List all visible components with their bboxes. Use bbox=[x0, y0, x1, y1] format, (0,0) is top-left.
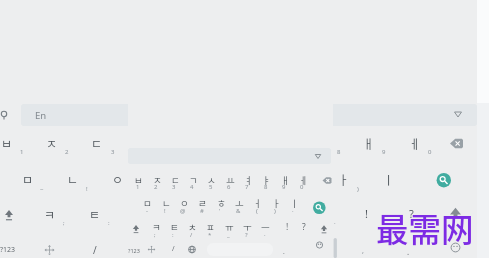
button[interactable]: 8 bbox=[236, 172, 296, 202]
button[interactable]: & bbox=[238, 174, 298, 204]
button[interactable]: ㅡ bbox=[291, 199, 351, 229]
button[interactable]: ㅏ bbox=[314, 164, 374, 194]
button[interactable]: ㅏ bbox=[246, 188, 306, 218]
button[interactable]: ! bbox=[57, 174, 117, 204]
button[interactable]: 3 bbox=[83, 137, 143, 167]
button[interactable]: En bbox=[11, 100, 71, 130]
button[interactable]: 8 bbox=[309, 137, 369, 167]
button[interactable]: 1 bbox=[0, 137, 52, 167]
button[interactable]: . bbox=[378, 236, 438, 258]
button[interactable]: ㅛ bbox=[200, 165, 260, 195]
button[interactable]: ㄹ bbox=[172, 188, 232, 218]
button[interactable]: ㅋ bbox=[126, 212, 186, 242]
button[interactable]: ㄱ bbox=[113, 128, 173, 158]
button[interactable]: ㅌ bbox=[144, 212, 204, 242]
button[interactable]: ' bbox=[193, 174, 253, 204]
button[interactable]: ㅅ bbox=[181, 165, 241, 195]
button[interactable]: / bbox=[125, 208, 185, 238]
button[interactable]: - bbox=[117, 196, 177, 226]
button[interactable]: ㅎ bbox=[178, 164, 238, 194]
button[interactable]: 5 bbox=[181, 172, 241, 202]
button[interactable]: ㅈ bbox=[127, 165, 187, 195]
button[interactable]: / bbox=[161, 220, 221, 250]
button[interactable]: 4 bbox=[162, 172, 222, 202]
button[interactable]: ㄱ bbox=[163, 165, 223, 195]
button[interactable]: * bbox=[170, 208, 230, 238]
button[interactable]: ㅂ bbox=[108, 165, 168, 195]
button[interactable]: ㄷ bbox=[67, 128, 127, 158]
button[interactable]: ㅓ bbox=[269, 164, 329, 194]
button[interactable]: # bbox=[172, 196, 232, 226]
button[interactable]: ㅇ bbox=[154, 188, 214, 218]
button[interactable]: ㅜ bbox=[217, 212, 277, 242]
button[interactable]: ?123 bbox=[0, 235, 38, 258]
button[interactable]: · bbox=[263, 196, 323, 226]
button[interactable]: 0 bbox=[272, 172, 332, 202]
button[interactable]: ㅐ bbox=[339, 128, 399, 158]
button[interactable]: ㅌ bbox=[65, 199, 125, 229]
button[interactable]: 2 bbox=[37, 137, 97, 167]
button[interactable]: ! bbox=[336, 198, 396, 228]
button[interactable]: # bbox=[148, 174, 208, 204]
button[interactable]: / bbox=[65, 235, 125, 258]
button[interactable]: 9 bbox=[254, 172, 314, 202]
button[interactable]: 3 bbox=[144, 172, 204, 202]
button[interactable]: ㅠ bbox=[201, 199, 261, 229]
button[interactable]: _ bbox=[198, 220, 258, 250]
button[interactable]: ~ bbox=[12, 174, 72, 204]
button[interactable]: ㄴ bbox=[43, 164, 103, 194]
button[interactable]: _ bbox=[215, 208, 275, 238]
button[interactable] bbox=[128, 148, 331, 164]
button[interactable]: ! bbox=[257, 212, 317, 242]
button[interactable]: ㅣ bbox=[359, 164, 419, 194]
button[interactable]: ㅓ bbox=[227, 188, 287, 218]
button[interactable]: 0 bbox=[400, 137, 460, 167]
button[interactable]: 6 bbox=[219, 137, 279, 167]
button[interactable]: ㅈ bbox=[22, 128, 82, 158]
button[interactable]: 4 bbox=[128, 137, 188, 167]
button[interactable]: ㄷ bbox=[145, 165, 205, 195]
button[interactable]: ?123 bbox=[104, 235, 164, 258]
button[interactable]: / bbox=[143, 234, 203, 258]
button[interactable]: ? bbox=[216, 220, 276, 250]
button[interactable]: ㅠ bbox=[199, 212, 259, 242]
button[interactable]: & bbox=[208, 196, 268, 226]
button[interactable]: 5 bbox=[173, 137, 233, 167]
button[interactable]: : bbox=[79, 208, 139, 238]
button[interactable]: ; bbox=[125, 220, 185, 250]
button[interactable]: ) bbox=[245, 196, 305, 226]
button[interactable]: ㅡ bbox=[235, 212, 295, 242]
button[interactable]: , bbox=[333, 236, 393, 258]
button[interactable]: ㅜ bbox=[246, 199, 306, 229]
button[interactable]: · bbox=[235, 220, 295, 250]
button[interactable]: ㅂ bbox=[0, 128, 37, 158]
button[interactable]: ㅕ bbox=[249, 128, 309, 158]
button[interactable]: 7 bbox=[217, 172, 277, 202]
button[interactable]: ㅁ bbox=[0, 164, 58, 194]
button[interactable]: 1 bbox=[108, 172, 168, 202]
button[interactable]: ㅇ bbox=[88, 164, 148, 194]
button[interactable]: 2 bbox=[126, 172, 186, 202]
button[interactable]: ㅁ bbox=[117, 188, 177, 218]
button[interactable]: ㅍ bbox=[180, 212, 240, 242]
button[interactable]: ( bbox=[227, 196, 287, 226]
button[interactable]: ㄴ bbox=[136, 188, 196, 218]
button[interactable]: ? bbox=[274, 212, 334, 242]
button[interactable]: ? bbox=[260, 208, 320, 238]
button[interactable]: ㅊ bbox=[111, 199, 171, 229]
button[interactable]: ㅛ bbox=[203, 128, 263, 158]
button[interactable]: ㅗ bbox=[209, 188, 269, 218]
button[interactable]: ㅊ bbox=[162, 212, 222, 242]
button[interactable]: : bbox=[143, 220, 203, 250]
button[interactable]: ( bbox=[283, 174, 343, 204]
button[interactable]: ㅔ bbox=[273, 165, 333, 195]
button[interactable]: 6 bbox=[199, 172, 259, 202]
button[interactable]: @ bbox=[153, 196, 213, 226]
button[interactable]: ㅗ bbox=[223, 164, 283, 194]
button[interactable] bbox=[21, 104, 477, 126]
button[interactable]: ; bbox=[34, 208, 94, 238]
button[interactable]: ㅔ bbox=[385, 128, 445, 158]
button[interactable]: ' bbox=[190, 196, 250, 226]
button[interactable]: @ bbox=[102, 174, 162, 204]
